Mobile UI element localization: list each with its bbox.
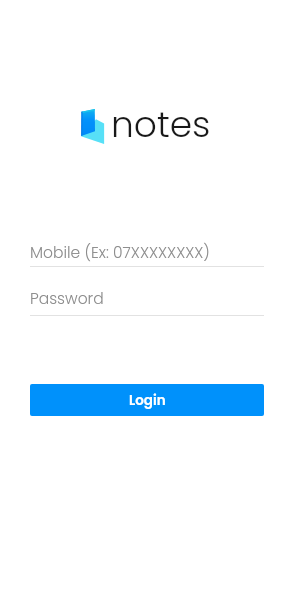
button[interactable]: Mobile (Ex: 07XXXXXXXX)	[30, 234, 264, 267]
staticText: Mobile (Ex: 07XXXXXXXX)	[30, 242, 210, 264]
staticText: Password	[30, 288, 104, 310]
staticText: notes	[111, 99, 211, 149]
staticText: Login	[129, 391, 166, 410]
other: notes logo	[80, 108, 106, 145]
button[interactable]: Password	[30, 280, 264, 316]
button[interactable]: Login	[30, 384, 264, 416]
